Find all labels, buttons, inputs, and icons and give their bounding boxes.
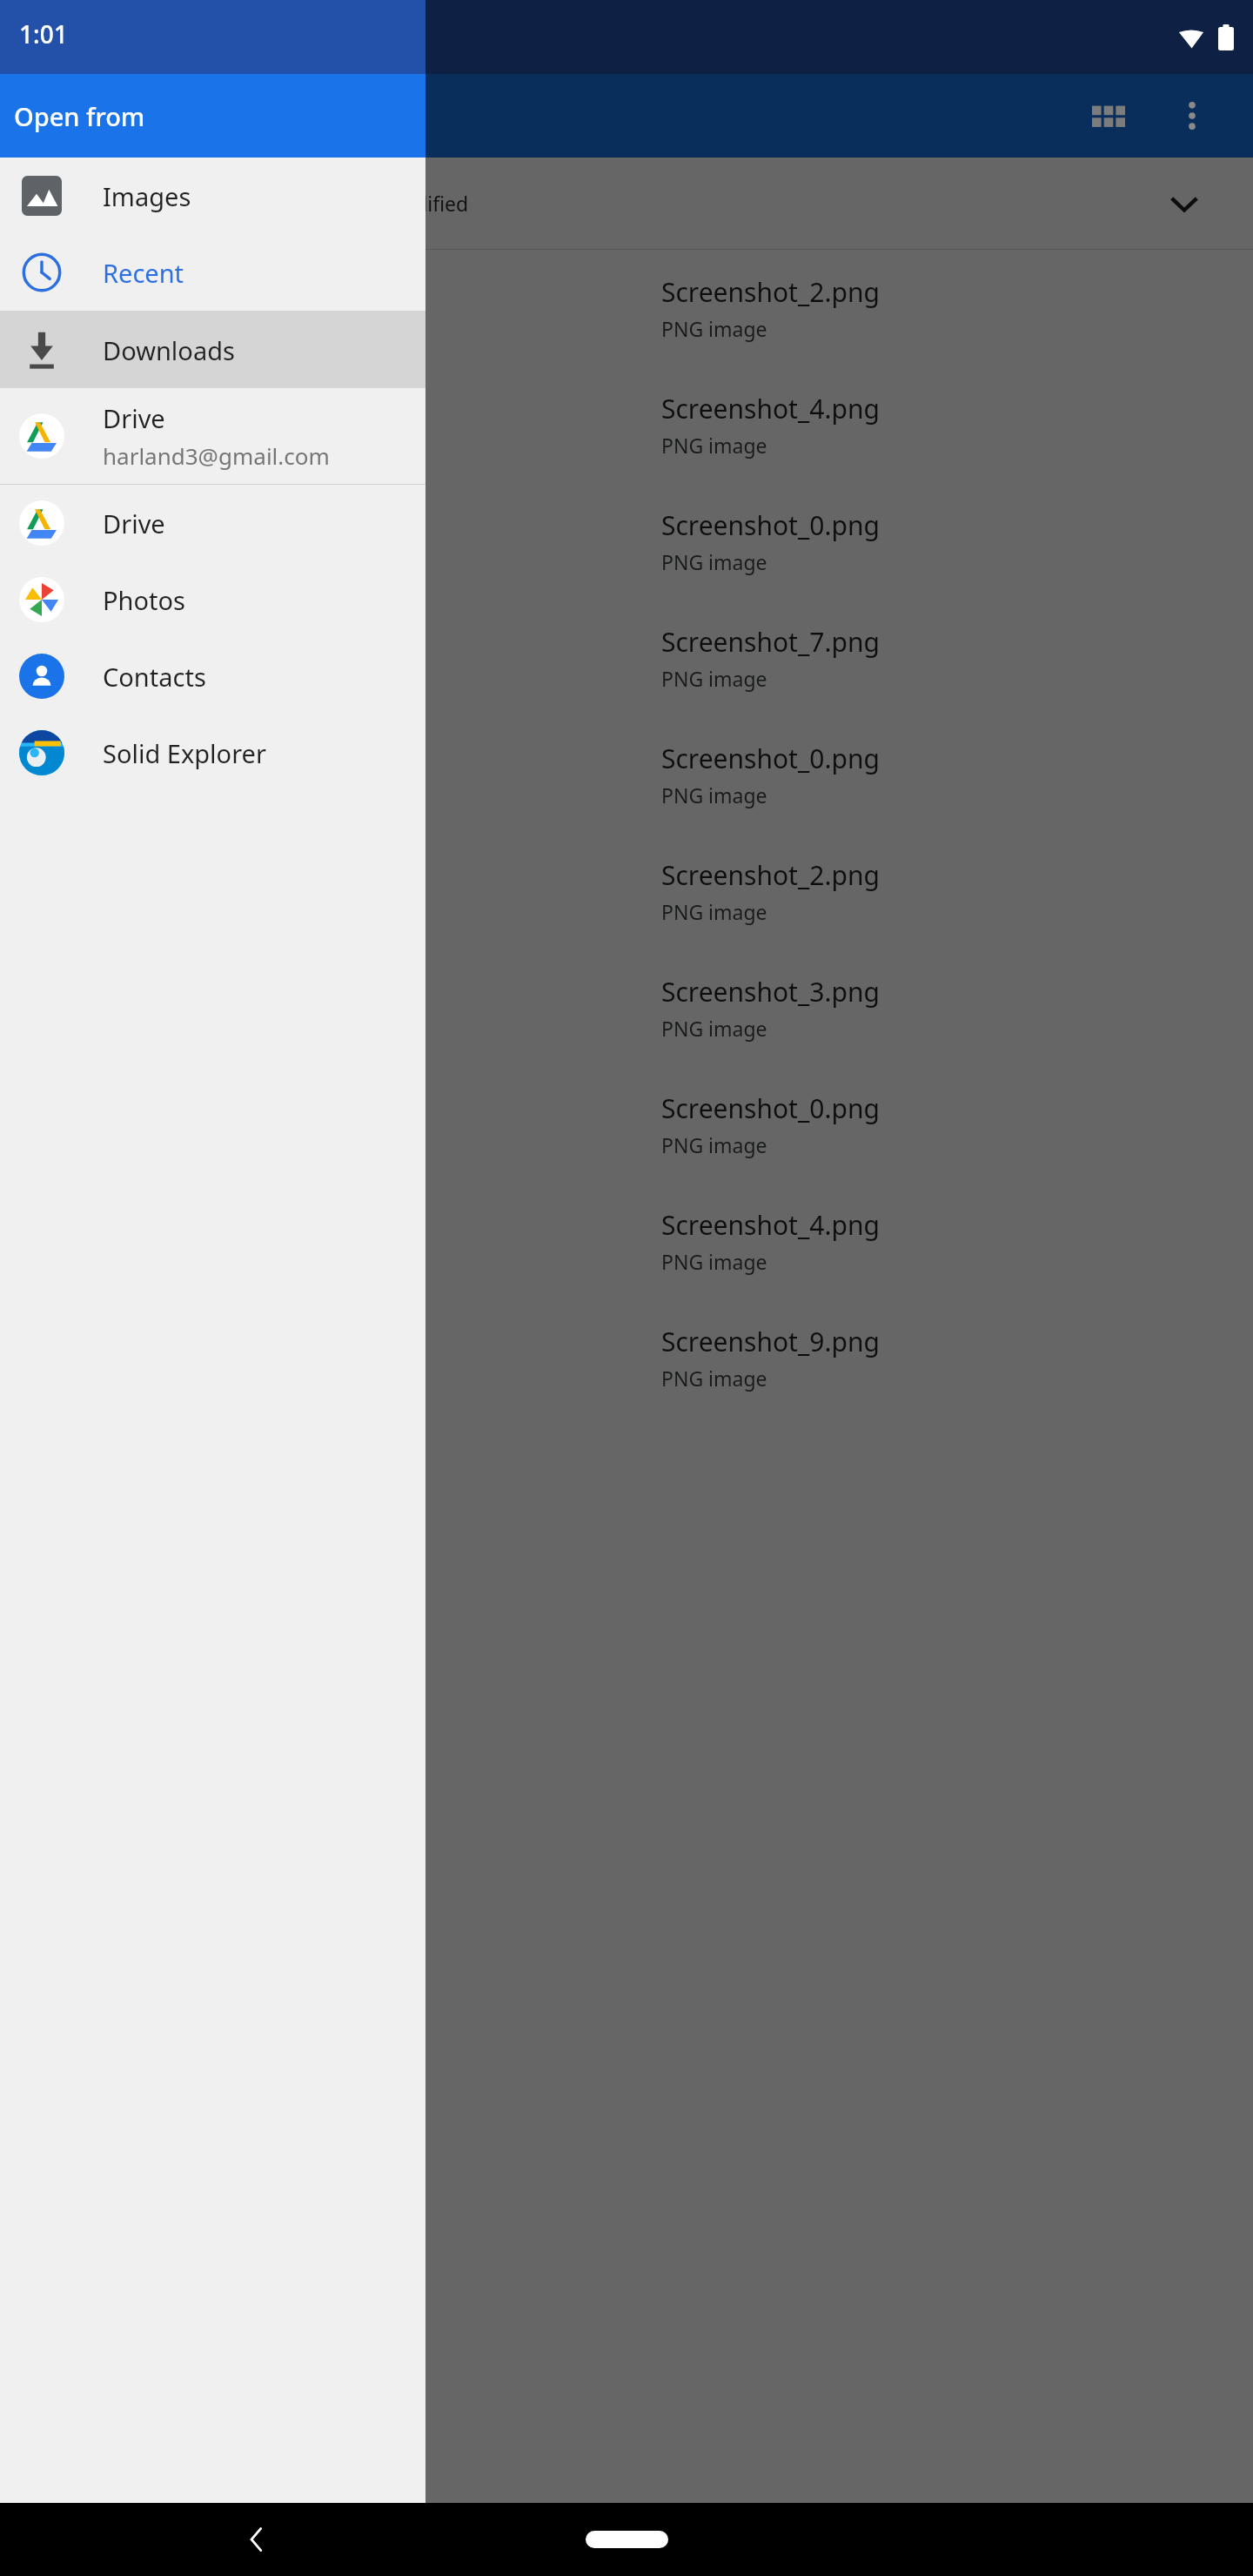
button[interactable]: Back <box>231 2513 283 2566</box>
button[interactable]: Solid Explorer <box>0 714 425 791</box>
staticText: Drive <box>103 506 165 540</box>
staticText: Screenshot_4.png <box>661 391 880 426</box>
staticText: PNG image <box>661 782 767 808</box>
button[interactable]: Recent <box>0 234 425 311</box>
staticText: PNG image <box>661 432 767 459</box>
staticText: PNG image <box>661 898 767 925</box>
button[interactable]: Contacts <box>0 638 425 714</box>
staticText: PNG image <box>661 665 767 692</box>
staticText: Solid Explorer <box>103 736 266 770</box>
staticText: Screenshot_2.png <box>661 857 880 893</box>
staticText: Screenshot_9.png <box>661 1324 880 1359</box>
staticText: PNG image <box>661 1015 767 1042</box>
button[interactable]: Drive <box>0 388 425 484</box>
staticText: Open from <box>14 99 145 133</box>
staticText: Recent <box>103 256 184 290</box>
staticText: PNG image <box>661 1365 767 1392</box>
button[interactable]: Images <box>0 158 425 234</box>
staticText: Screenshot_2.png <box>661 274 880 310</box>
staticText: Photos <box>103 583 185 617</box>
staticText: PNG image <box>661 548 767 575</box>
staticText: Screenshot_0.png <box>661 741 880 776</box>
staticText: harland3@gmail.com <box>103 440 330 471</box>
staticText: Sort by modified <box>313 190 469 217</box>
staticText: Screenshot_7.png <box>661 624 880 660</box>
staticText: Screenshot_4.png <box>661 1207 880 1243</box>
staticText: PNG image <box>661 1248 767 1275</box>
staticText: Screenshot_0.png <box>661 1090 880 1126</box>
button[interactable]: Grid view <box>1067 74 1150 158</box>
staticText: Screenshot_0.png <box>661 507 880 543</box>
button[interactable]: Drive <box>0 485 425 561</box>
staticText: PNG image <box>661 1131 767 1158</box>
staticText: Images <box>103 179 191 213</box>
staticText: PNG image <box>661 315 767 342</box>
button[interactable]: Photos <box>0 561 425 638</box>
staticText: Contacts <box>103 660 206 694</box>
staticText: Drive <box>103 401 165 435</box>
staticText: 1:01 <box>19 17 68 50</box>
button[interactable]: More options <box>1150 74 1234 158</box>
button[interactable]: Downloads <box>0 312 425 388</box>
button[interactable]: Home <box>586 2531 668 2548</box>
staticText: Screenshot_3.png <box>661 974 880 1010</box>
staticText: Downloads <box>103 333 235 367</box>
